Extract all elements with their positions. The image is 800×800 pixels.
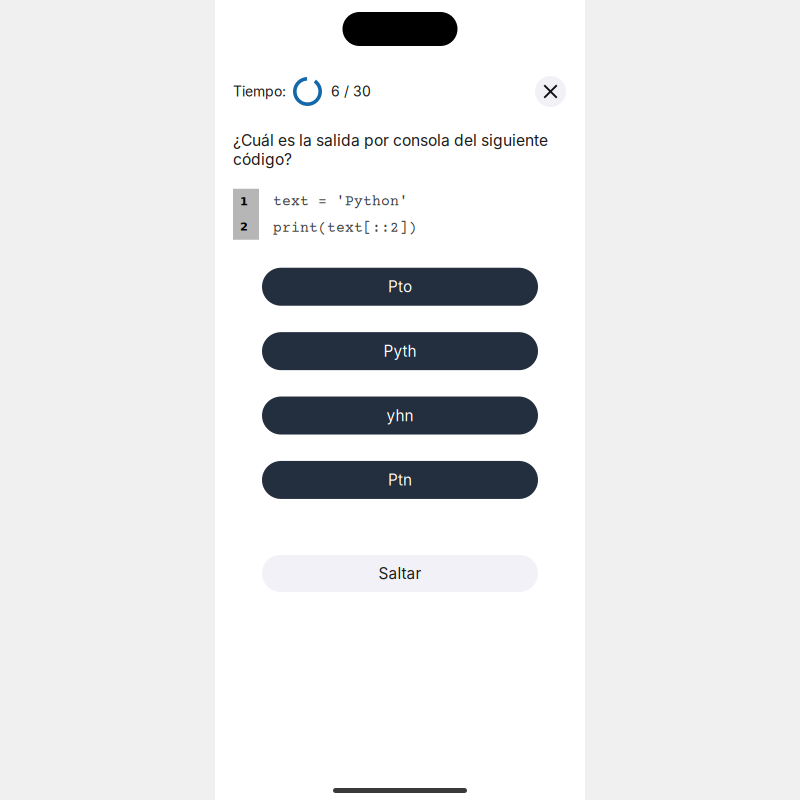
- staticText: Pto: [388, 277, 412, 296]
- staticText: print(text[::2]): [273, 220, 417, 237]
- staticText: text = 'Python': [273, 194, 408, 210]
- staticText: 1: [240, 195, 248, 208]
- staticText: ¿Cuál es la salida por consola del sigui…: [233, 131, 548, 169]
- button[interactable]: Pyth: [262, 332, 538, 370]
- button[interactable]: Saltar: [262, 555, 538, 592]
- staticText: Ptn: [388, 471, 412, 489]
- staticText: Saltar: [378, 564, 421, 583]
- button[interactable]: Cerrar: [535, 76, 566, 107]
- staticText: Tiempo:: [233, 83, 286, 100]
- button[interactable]: Pto: [262, 268, 538, 306]
- button[interactable]: yhn: [262, 397, 538, 435]
- staticText: 2: [240, 220, 248, 233]
- staticText: Pyth: [383, 342, 416, 360]
- staticText: 6 / 30: [331, 83, 371, 100]
- button[interactable]: Ptn: [262, 461, 538, 499]
- staticText: yhn: [386, 406, 413, 425]
